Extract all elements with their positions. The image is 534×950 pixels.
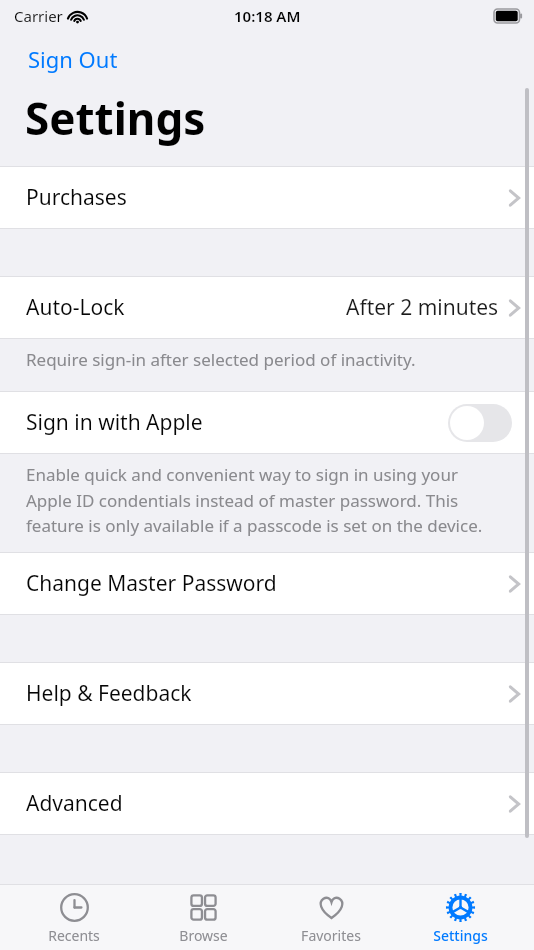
button[interactable]: Sign Out [26, 42, 120, 76]
staticText: Settings [433, 926, 488, 945]
staticText: Change Master Password [26, 569, 277, 598]
staticText: Purchases [26, 183, 127, 212]
button[interactable]: Auto-Lock [0, 277, 534, 338]
staticText: Carrier [14, 6, 63, 26]
staticText: Settings [25, 88, 206, 148]
staticText: Advanced [26, 789, 123, 818]
staticText: After 2 minutes [346, 293, 499, 322]
button[interactable]: Recents [19, 885, 129, 950]
staticText: Browse [179, 926, 228, 945]
button[interactable]: Sign in with Apple toggle, off [448, 404, 512, 442]
staticText: Require sign-in after selected period of… [26, 348, 416, 371]
staticText: Help & Feedback [26, 679, 192, 708]
button[interactable]: Sign in with Apple [0, 392, 534, 453]
staticText: Sign Out [28, 44, 118, 74]
staticText: Favorites [301, 926, 361, 945]
button[interactable]: Advanced [0, 773, 534, 834]
staticText: Enable quick and convenient way to sign … [26, 463, 504, 537]
staticText: Sign in with Apple [26, 408, 203, 437]
button[interactable]: Browse [148, 885, 258, 950]
button[interactable]: Change Master Password [0, 553, 534, 614]
button[interactable]: Help & Feedback [0, 663, 534, 724]
button[interactable]: Favorites [276, 885, 386, 950]
button[interactable]: Settings [405, 885, 515, 950]
staticText: Auto-Lock [26, 293, 125, 322]
staticText: Recents [48, 926, 100, 945]
button[interactable]: Purchases [0, 167, 534, 228]
staticText: 10:18 AM [234, 6, 301, 26]
